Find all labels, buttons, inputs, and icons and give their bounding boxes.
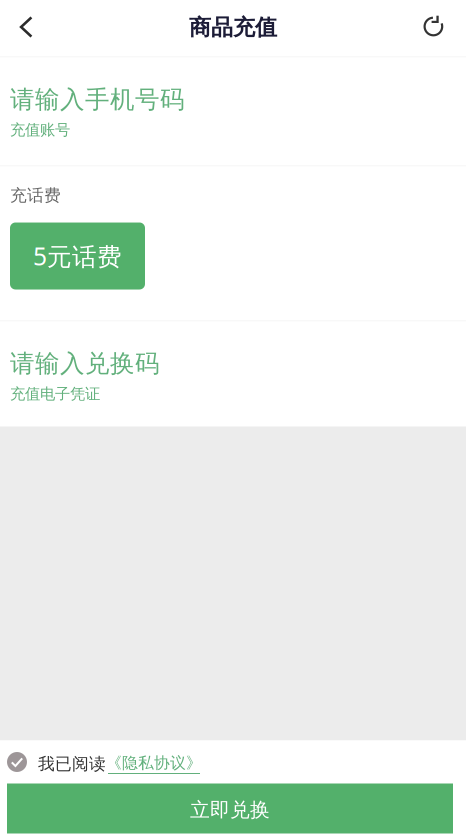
staticText: 《隐私协议》 — [106, 753, 202, 773]
staticText: 5元话费 — [33, 239, 122, 273]
button[interactable]: Refresh — [408, 0, 460, 57]
staticText: 我已阅读 — [38, 753, 106, 774]
staticText: 充值电子凭证 — [10, 384, 100, 404]
button[interactable]: 请输入兑换码 — [0, 321, 466, 426]
button[interactable]: 《隐私协议》 — [106, 740, 202, 784]
staticText: 请输入手机号码 — [10, 84, 185, 115]
button[interactable]: 请输入手机号码 — [0, 57, 466, 165]
button[interactable]: Back — [5, 1, 47, 56]
staticText: 请输入兑换码 — [10, 348, 160, 379]
button[interactable]: 5元话费 — [10, 222, 145, 289]
button[interactable]: 立即兑换 — [7, 783, 453, 833]
staticText: 充话费 — [10, 185, 61, 206]
staticText: 立即兑换 — [190, 797, 270, 822]
staticText: 充值账号 — [10, 120, 70, 140]
staticText: 商品充值 — [189, 14, 277, 41]
button[interactable]: Agree to privacy policy — [0, 740, 27, 784]
